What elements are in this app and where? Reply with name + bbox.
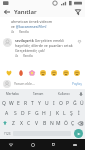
button[interactable]: X: [17, 118, 25, 128]
staticText: Z: [12, 120, 15, 127]
button[interactable]: Ş: [68, 108, 75, 118]
button[interactable]: Gülen yüz: [72, 68, 81, 77]
staticText: G: [35, 110, 39, 117]
staticText: sevilayzrtk Gerçekten emekli hayırlıdır,…: [15, 38, 74, 53]
button[interactable]: F: [26, 108, 33, 118]
button[interactable]: V: [33, 118, 41, 128]
button[interactable]: Büyük harf: [0, 118, 9, 128]
button[interactable]: K: [54, 108, 61, 118]
button[interactable]: Kullanıcı: [51, 89, 77, 98]
button[interactable]: M: [55, 118, 62, 128]
button[interactable]: J: [47, 108, 54, 118]
button[interactable]: Sesle yaz: [77, 89, 85, 98]
staticText: Ğ: [73, 100, 77, 107]
button[interactable]: B: [41, 118, 48, 128]
button[interactable]: P: [64, 98, 71, 108]
staticText: T: [31, 100, 34, 107]
button[interactable]: Ateş: [16, 68, 25, 77]
staticText: N: [50, 120, 54, 127]
staticText: Yanıtlar: [14, 8, 37, 16]
staticText: B: [43, 120, 47, 127]
button[interactable]: L: [61, 108, 68, 118]
staticText: 4s: [15, 54, 19, 58]
staticText: W: [9, 100, 14, 107]
button[interactable]: Ö: [62, 118, 69, 128]
button[interactable]: Y: [36, 98, 43, 108]
staticText: İ: [78, 110, 80, 117]
button[interactable]: Klavyeyi kapat: [64, 139, 85, 150]
staticText: E: [17, 100, 20, 107]
button[interactable]: S: [11, 108, 19, 118]
button[interactable]: Gülen yüz: [61, 68, 70, 77]
button[interactable]: Yanıtla: [23, 54, 33, 58]
button[interactable]: W: [8, 98, 15, 108]
staticText: Q: [2, 100, 6, 107]
button[interactable]: Sil: [76, 118, 85, 128]
button[interactable]: ?123: [2, 128, 12, 139]
button[interactable]: A: [3, 108, 11, 118]
staticText: C: [27, 120, 31, 127]
button[interactable]: H: [40, 108, 47, 118]
staticText: S: [14, 110, 17, 117]
staticText: K: [56, 110, 60, 117]
button[interactable]: O: [57, 98, 64, 108]
button[interactable]: Ğ: [71, 98, 78, 108]
staticText: Tamam: [33, 92, 44, 96]
button[interactable]: U: [43, 98, 50, 108]
button[interactable]: E: [15, 98, 22, 108]
button[interactable]: D: [19, 108, 26, 118]
staticText: P: [66, 100, 70, 107]
button[interactable]: Gülen yüz: [49, 68, 58, 77]
button[interactable]: Gönder: [73, 7, 82, 16]
staticText: D: [21, 110, 25, 117]
staticText: ?123: [4, 132, 11, 136]
button[interactable]: Ana ekran: [22, 139, 43, 150]
button[interactable]: C: [25, 118, 33, 128]
staticText: R: [24, 100, 28, 107]
staticText: Kullanıcı: [58, 92, 70, 96]
staticText: V: [35, 120, 39, 127]
button[interactable]: Tamam: [25, 89, 51, 98]
button[interactable]: Ü: [78, 98, 85, 108]
staticText: L: [63, 110, 66, 117]
button[interactable]: Gülen yüz: [38, 68, 47, 77]
staticText: J: [50, 110, 52, 117]
button[interactable]: Yanıtla: [19, 30, 29, 34]
staticText: ahmetcan örnek videom ve @kacanınsesiFil…: [11, 19, 53, 29]
staticText: Ö: [64, 120, 68, 127]
staticText: F: [28, 110, 31, 117]
button[interactable]: sevilayzrtk Gerçekten emekli hayırlıdır,…: [0, 34, 85, 58]
button[interactable]: N: [48, 118, 55, 128]
staticText: Ç: [71, 120, 75, 127]
staticText: A: [5, 110, 9, 117]
button[interactable]: Yorum ekle...: [14, 81, 72, 86]
button[interactable]: Geri: [0, 139, 22, 150]
button[interactable]: R: [22, 98, 29, 108]
button[interactable]: Sarı kalp: [4, 68, 13, 77]
staticText: U: [45, 100, 49, 107]
button[interactable]: Z: [9, 118, 17, 128]
staticText: I: [53, 100, 55, 107]
button[interactable]: Merhaba: [0, 89, 25, 98]
button[interactable]: I: [50, 98, 57, 108]
staticText: X: [20, 120, 23, 127]
button[interactable]: Beğen: [76, 38, 82, 44]
button[interactable]: Çiçek: [27, 68, 36, 77]
button[interactable]: Ç: [69, 118, 76, 128]
button[interactable]: Paylaş: [72, 82, 82, 86]
button[interactable]: T: [29, 98, 36, 108]
staticText: M: [56, 120, 61, 127]
button[interactable]: ahmetcan örnek videom ve @kacanınsesiFil…: [0, 17, 85, 34]
button[interactable]: G: [33, 108, 40, 118]
staticText: 4s: [11, 30, 15, 34]
button[interactable]: Geri: [3, 8, 11, 16]
button[interactable]: Gönder: [74, 129, 83, 138]
button[interactable]: Son kullanılanlar: [43, 139, 64, 150]
staticText: Ş: [70, 110, 73, 117]
button[interactable]: İ: [75, 108, 82, 118]
staticText: H: [42, 110, 46, 117]
staticText: Ü: [80, 100, 84, 107]
button[interactable]: Q: [0, 98, 8, 108]
staticText: Merhaba: [6, 92, 19, 96]
